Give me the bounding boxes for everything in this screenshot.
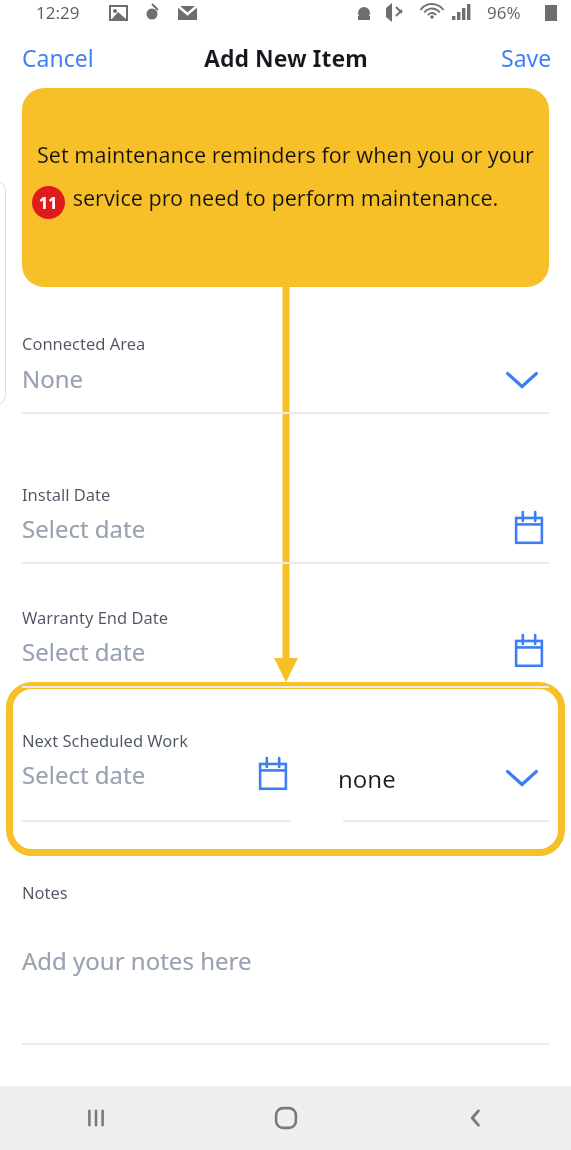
- button[interactable]: Set maintenance reminders for when you o…: [22, 88, 549, 287]
- button[interactable]: Pick install date: [506, 506, 552, 552]
- staticText: Add your notes here: [22, 944, 252, 977]
- button[interactable]: Pick next scheduled work date: [250, 752, 296, 798]
- staticText: Next Scheduled Work: [22, 729, 188, 751]
- staticText: Select date: [22, 635, 146, 668]
- staticText: Save: [501, 42, 552, 73]
- staticText: Notes: [22, 881, 68, 903]
- button[interactable]: Save: [489, 34, 571, 81]
- button[interactable]: Cancel: [0, 34, 106, 81]
- button[interactable]: [6, 682, 565, 856]
- staticText: Connected Area: [22, 332, 146, 354]
- staticText: 12:29: [36, 1, 80, 24]
- staticText: 11: [39, 192, 58, 214]
- staticText: Cancel: [22, 42, 94, 73]
- staticText: Add New Item: [204, 42, 368, 73]
- staticText: none: [338, 762, 396, 795]
- staticText: Install Date: [22, 483, 111, 505]
- button[interactable]: Back: [381, 1086, 571, 1150]
- button[interactable]: Home: [191, 1086, 381, 1150]
- button[interactable]: Pick warranty end date: [506, 629, 552, 675]
- button[interactable]: Open Connected Area dropdown: [498, 356, 546, 404]
- button[interactable]: Recent apps: [0, 1086, 191, 1150]
- staticText: Set maintenance reminders for when you o…: [36, 140, 535, 212]
- staticText: None: [22, 362, 84, 395]
- staticText: Select date: [22, 758, 146, 791]
- staticText: Select date: [22, 512, 146, 545]
- button[interactable]: Open repeat dropdown: [498, 754, 546, 802]
- staticText: 96%: [487, 1, 521, 24]
- staticText: Warranty End Date: [22, 606, 169, 628]
